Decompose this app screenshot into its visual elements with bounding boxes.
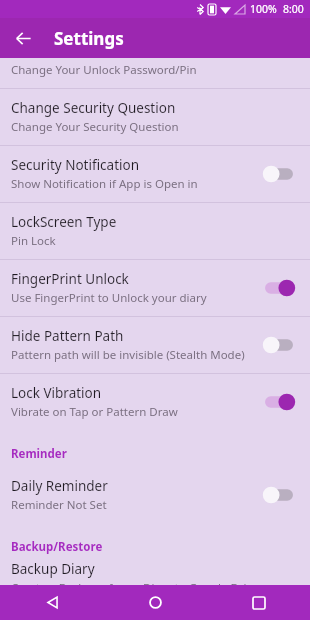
button[interactable]: FingerPrint Unlock: [0, 260, 310, 316]
button[interactable]: Backup Diary: [0, 560, 310, 585]
staticText: Create a Backup of your Diary to Google …: [11, 580, 262, 585]
button[interactable]: Back: [8, 23, 38, 53]
button[interactable]: [262, 391, 296, 413]
staticText: Security Notification: [11, 156, 140, 174]
staticText: Hide Pattern Path: [11, 327, 124, 345]
staticText: Daily Reminder: [11, 477, 108, 495]
staticText: Change Security Question: [11, 99, 176, 117]
button[interactable]: Daily Reminder: [0, 467, 310, 523]
staticText: Reminder Not Set: [11, 497, 107, 513]
staticText: Change Your Unlock Password/Pin: [11, 62, 197, 78]
staticText: Show Notification if App is Open in Back…: [11, 176, 262, 192]
button[interactable]: LockScreen Type: [0, 203, 310, 259]
button[interactable]: [262, 334, 296, 356]
staticText: Backup/Restore: [11, 539, 103, 555]
staticText: Change Your Security Question: [11, 119, 179, 135]
button[interactable]: Lock Vibration: [0, 374, 310, 430]
staticText: FingerPrint Unlock: [11, 270, 129, 288]
staticText: Vibrate on Tap or Pattern Draw: [11, 404, 178, 420]
staticText: Use FingerPrint to Unlock your diary: [11, 290, 207, 306]
staticText: Pin Lock: [11, 233, 56, 249]
button[interactable]: Hide Pattern Path: [0, 317, 310, 373]
staticText: Pattern path will be invisible (Stealth …: [11, 347, 245, 363]
button[interactable]: Change Security Question: [0, 89, 310, 145]
button[interactable]: Change Your Unlock Password/Pin: [0, 58, 310, 88]
button[interactable]: [262, 277, 296, 299]
button[interactable]: [262, 484, 296, 506]
button[interactable]: Security Notification: [0, 146, 310, 202]
button[interactable]: Home: [104, 585, 207, 620]
staticText: 8:00: [283, 2, 304, 16]
staticText: LockScreen Type: [11, 213, 117, 231]
button[interactable]: Back: [0, 585, 104, 620]
button[interactable]: Recent apps: [207, 585, 310, 620]
staticText: 100%: [250, 2, 277, 16]
button[interactable]: [262, 163, 296, 185]
staticText: Lock Vibration: [11, 384, 102, 402]
staticText: Reminder: [11, 446, 67, 462]
staticText: Settings: [54, 27, 124, 50]
staticText: Backup Diary: [11, 560, 95, 578]
